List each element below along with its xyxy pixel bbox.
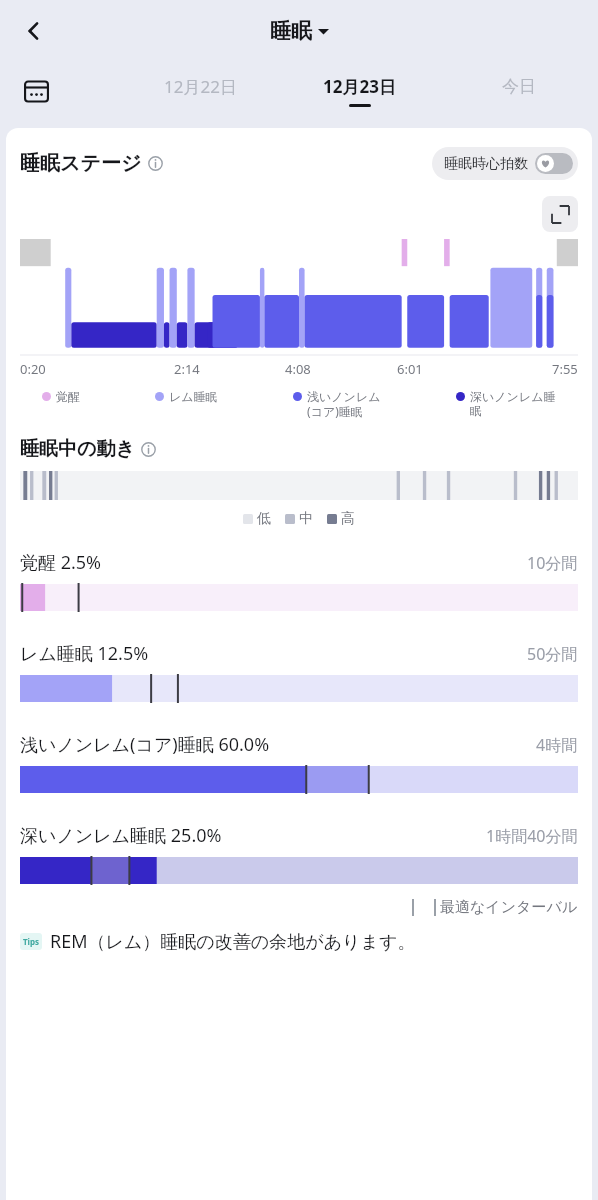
staticText: 中 — [299, 510, 313, 528]
staticText: 深いノンレム睡眠 25.0% — [20, 823, 222, 848]
staticText: 2:14 — [174, 360, 200, 378]
button[interactable]: Tips — [20, 929, 578, 954]
staticText: 睡眠ステージ — [20, 151, 142, 176]
staticText: 今日 — [502, 76, 536, 97]
staticText: 12月22日 — [164, 75, 237, 98]
button[interactable]: 今日 — [439, 62, 598, 120]
staticText: 深いノンレム睡 眠 — [470, 389, 556, 419]
button[interactable]: 睡眠時心拍数 — [432, 147, 578, 180]
button[interactable]: 12月22日 — [120, 62, 280, 120]
button[interactable]: カレンダー — [14, 69, 58, 113]
staticText: 浅いノンレム (コア)睡眠 — [307, 389, 381, 419]
button[interactable]: 12月23日 — [280, 62, 439, 120]
staticText: 12月23日 — [323, 75, 396, 98]
button[interactable]: レム睡眠 12.5% — [20, 641, 578, 702]
staticText: 50分間 — [527, 643, 578, 665]
staticText: 0:20 — [20, 360, 46, 378]
staticText: 高 — [341, 510, 355, 528]
button[interactable]: 拡大 — [542, 196, 578, 232]
button[interactable]: 覚醒 2.5% — [20, 550, 578, 611]
button[interactable]: 浅いノンレム(コア)睡眠 60.0% — [20, 732, 578, 793]
staticText: 1時間40分間 — [486, 825, 578, 847]
staticText: 4:08 — [285, 360, 311, 378]
staticText: 最適なインターバル — [440, 898, 578, 917]
button[interactable]: 深いノンレム睡眠 25.0% — [20, 823, 578, 884]
button[interactable]: 戻る — [10, 7, 58, 55]
staticText: 6:01 — [397, 360, 423, 378]
staticText: レム睡眠 12.5% — [20, 641, 149, 666]
staticText: レム睡眠 — [169, 389, 218, 404]
staticText: 覚醒 2.5% — [20, 550, 102, 575]
staticText: 4時間 — [536, 734, 578, 756]
staticText: 睡眠 — [270, 18, 312, 44]
button[interactable]: 睡眠 — [270, 18, 329, 44]
staticText: 睡眠時心拍数 — [444, 155, 528, 173]
staticText: 7:55 — [552, 360, 578, 378]
staticText: 覚醒 — [56, 389, 80, 404]
staticText: 低 — [257, 510, 271, 528]
staticText: 睡眠中の動き — [20, 437, 135, 461]
staticText: 浅いノンレム(コア)睡眠 60.0% — [20, 732, 270, 757]
staticText: REM（レム）睡眠の改善の余地があります。 — [50, 929, 416, 954]
staticText: Tips — [23, 936, 40, 947]
staticText: 10分間 — [527, 552, 578, 574]
